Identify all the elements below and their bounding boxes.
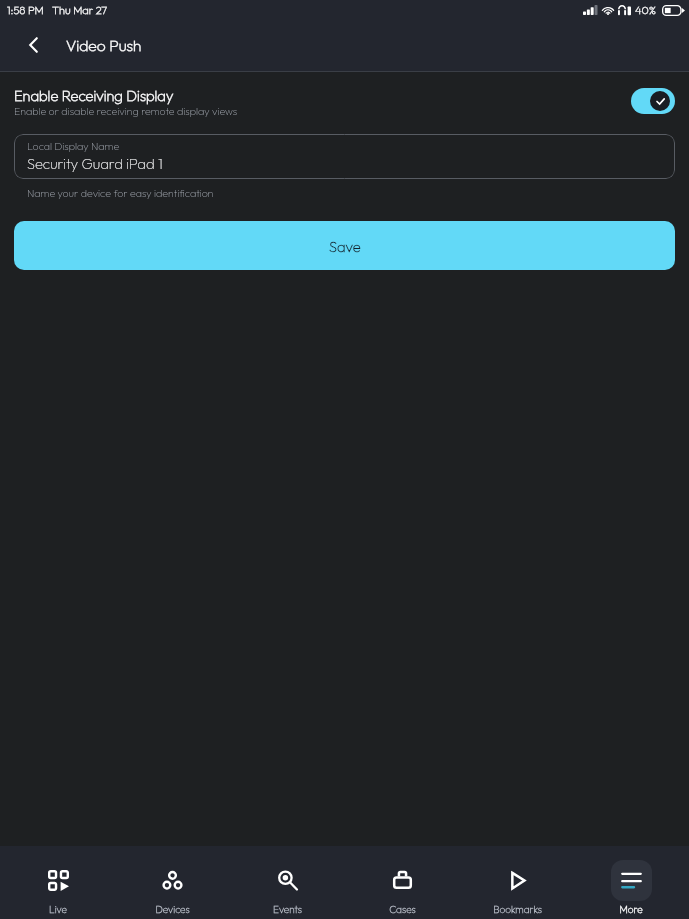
staticText: 40%: [635, 3, 657, 17]
staticText: Name your device for easy identification: [27, 186, 214, 199]
staticText: 1:58 PM: [7, 3, 44, 17]
staticText: Live: [49, 903, 67, 916]
button[interactable]: Back: [12, 23, 56, 67]
button[interactable]: Enable receiving display: [631, 88, 675, 114]
button[interactable]: Enable Receiving Display: [0, 74, 689, 128]
button[interactable]: Local Display Name: [14, 134, 675, 179]
staticText: Cases: [389, 903, 416, 916]
staticText: Local Display Name: [27, 139, 120, 152]
staticText: Events: [273, 903, 302, 916]
button[interactable]: Events: [230, 860, 344, 916]
staticText: Enable Receiving Display: [14, 86, 174, 104]
staticText: Video Push: [66, 35, 142, 55]
staticText: More: [619, 903, 643, 916]
button[interactable]: Save: [14, 221, 675, 270]
button[interactable]: Live: [1, 860, 115, 916]
staticText: Enable or disable receiving remote displ…: [14, 104, 238, 117]
button[interactable]: Devices: [115, 860, 229, 916]
staticText: Thu Mar 27: [52, 3, 108, 17]
button[interactable]: Cases: [345, 860, 459, 916]
staticText: Devices: [155, 903, 190, 916]
button[interactable]: Bookmarks: [460, 860, 574, 916]
staticText: Save: [329, 237, 361, 255]
staticText: Bookmarks: [493, 903, 542, 916]
button[interactable]: More: [574, 860, 688, 916]
staticText: Security Guard iPad 1: [27, 154, 163, 172]
